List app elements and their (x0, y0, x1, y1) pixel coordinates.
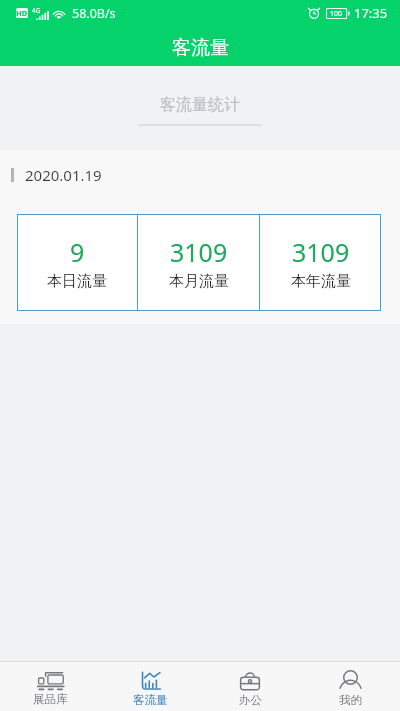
staticText: 我的 (339, 693, 362, 707)
staticText: 本日流量 (47, 272, 107, 291)
staticText: 3109 (292, 235, 350, 269)
staticText: 2020.01.19 (25, 165, 102, 185)
staticText: 展品库 (33, 692, 68, 706)
button[interactable]: 我的 (300, 662, 400, 711)
staticText: 本月流量 (169, 272, 229, 291)
staticText: 9 (70, 235, 85, 269)
staticText: 客流量统计 (160, 95, 240, 115)
staticText: 办公 (239, 693, 262, 707)
button[interactable]: 展品库 (0, 662, 100, 711)
staticText: 3109 (170, 235, 228, 269)
button[interactable]: 3109 (138, 214, 259, 311)
staticText: 4G (32, 6, 41, 15)
button[interactable]: 9 (17, 214, 137, 311)
staticText: 客流量 (172, 36, 229, 60)
staticText: HD (16, 8, 28, 18)
staticText: 客流量 (133, 693, 168, 707)
button[interactable]: 客流量 (100, 662, 200, 711)
staticText: 17:35 (354, 4, 388, 22)
button[interactable]: 3109 (260, 214, 381, 311)
button[interactable]: 客流量统计 (114, 66, 286, 134)
staticText: 100 (330, 9, 343, 19)
button[interactable]: 办公 (200, 662, 300, 711)
staticText: 本年流量 (291, 272, 351, 291)
staticText: 58.0B/s (72, 5, 116, 22)
